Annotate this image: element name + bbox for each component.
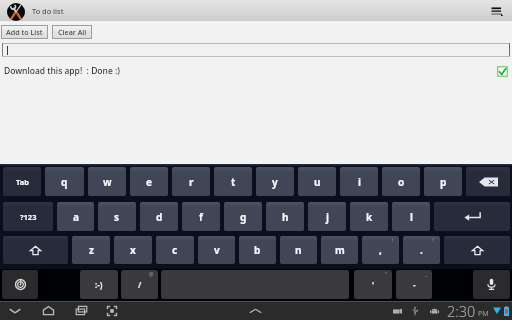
button[interactable]: Add to List — [1, 25, 48, 39]
staticText: Tab — [16, 177, 29, 187]
staticText: p — [440, 175, 447, 189]
button[interactable]: m — [321, 236, 358, 264]
button[interactable]: g — [224, 202, 262, 231]
button[interactable]: w — [88, 167, 126, 196]
staticText: To do list — [32, 6, 64, 16]
staticText: k — [366, 210, 373, 224]
button[interactable]: Fullscreen — [102, 301, 122, 320]
button[interactable]: p — [424, 167, 462, 196]
button[interactable]: ' — [354, 270, 392, 299]
button[interactable]: v — [198, 236, 235, 264]
button[interactable]: e — [130, 167, 168, 196]
button[interactable]: / — [121, 270, 158, 299]
button[interactable]: f — [182, 202, 220, 231]
staticText: l — [410, 210, 413, 224]
button[interactable]: Recent apps — [71, 301, 91, 320]
button[interactable]: , — [362, 236, 399, 264]
button[interactable]: Shift — [444, 236, 510, 264]
button[interactable]: Home — [38, 301, 58, 320]
staticText: o — [398, 175, 405, 189]
staticText: w — [103, 175, 112, 189]
staticText: b — [254, 243, 261, 257]
button[interactable]: Clear All — [52, 25, 92, 39]
staticText: - — [413, 279, 416, 290]
button[interactable]: y — [256, 167, 294, 196]
staticText: d — [156, 210, 163, 224]
staticText: ' — [372, 279, 375, 290]
staticText: i — [358, 175, 361, 189]
staticText: c — [172, 243, 178, 257]
button[interactable]: ?123 — [3, 202, 53, 231]
button[interactable]: - — [396, 270, 432, 299]
staticText: m — [335, 243, 345, 257]
staticText: / — [138, 279, 142, 290]
button[interactable]: n — [280, 236, 317, 264]
staticText: h — [282, 210, 289, 224]
button[interactable]: r — [172, 167, 210, 196]
staticText: g — [240, 210, 247, 224]
staticText: j — [326, 210, 329, 224]
staticText: f — [199, 210, 203, 224]
staticText: u — [314, 175, 321, 189]
button[interactable]: App icon, up — [7, 3, 25, 21]
button[interactable]: a — [57, 202, 94, 231]
button[interactable]: o — [382, 167, 420, 196]
staticText: x — [130, 243, 136, 257]
staticText: 2:30 — [447, 301, 476, 320]
button[interactable]: i — [340, 167, 378, 196]
staticText: s — [114, 210, 120, 224]
button[interactable]: u — [298, 167, 336, 196]
staticText: Clear All — [58, 27, 87, 37]
button[interactable]: l — [392, 202, 430, 231]
staticText: . — [420, 243, 423, 257]
button[interactable]: . — [403, 236, 440, 264]
button[interactable]: q — [45, 167, 84, 196]
staticText: _ — [425, 271, 428, 278]
button[interactable]: s — [98, 202, 136, 231]
staticText: q — [61, 175, 68, 189]
button[interactable]: d — [140, 202, 178, 231]
staticText: ? — [432, 237, 435, 244]
staticText: t — [231, 175, 236, 189]
staticText: z — [89, 243, 94, 257]
button[interactable] — [2, 43, 510, 57]
button[interactable]: b — [239, 236, 276, 264]
button[interactable]: :-) — [80, 270, 118, 299]
staticText: e — [146, 175, 152, 189]
button[interactable]: Enter — [434, 202, 510, 231]
button[interactable]: z — [72, 236, 110, 264]
button[interactable]: c — [156, 236, 194, 264]
staticText: r — [189, 175, 194, 189]
staticText: " — [385, 271, 388, 278]
button[interactable]: t — [214, 167, 252, 196]
staticText: , — [379, 243, 382, 257]
button[interactable]: Settings — [2, 270, 38, 299]
staticText: ! — [392, 237, 394, 244]
staticText: ?123 — [20, 212, 37, 222]
button[interactable]: Backspace — [466, 167, 510, 196]
staticText: Download this app! : Done :) — [4, 65, 120, 77]
button[interactable]: Tab — [3, 167, 41, 196]
button[interactable]: Notifications — [245, 301, 265, 320]
button[interactable]: h — [266, 202, 304, 231]
staticText: PM — [478, 309, 489, 319]
button[interactable]: Download this app! : Done :) — [0, 60, 512, 82]
staticText: n — [295, 243, 302, 257]
staticText: :-) — [95, 279, 103, 290]
button[interactable]: j — [308, 202, 346, 231]
button[interactable]: More options — [486, 0, 507, 21]
button[interactable]: x — [114, 236, 152, 264]
button[interactable]: k — [350, 202, 388, 231]
staticText: v — [214, 243, 220, 257]
staticText: @ — [149, 271, 154, 278]
staticText: a — [73, 210, 79, 224]
button[interactable]: Voice input — [473, 270, 510, 299]
button[interactable]: Shift — [3, 236, 68, 264]
staticText: Add to List — [6, 27, 43, 37]
button[interactable]: Back — [5, 301, 25, 320]
staticText: y — [272, 175, 278, 189]
